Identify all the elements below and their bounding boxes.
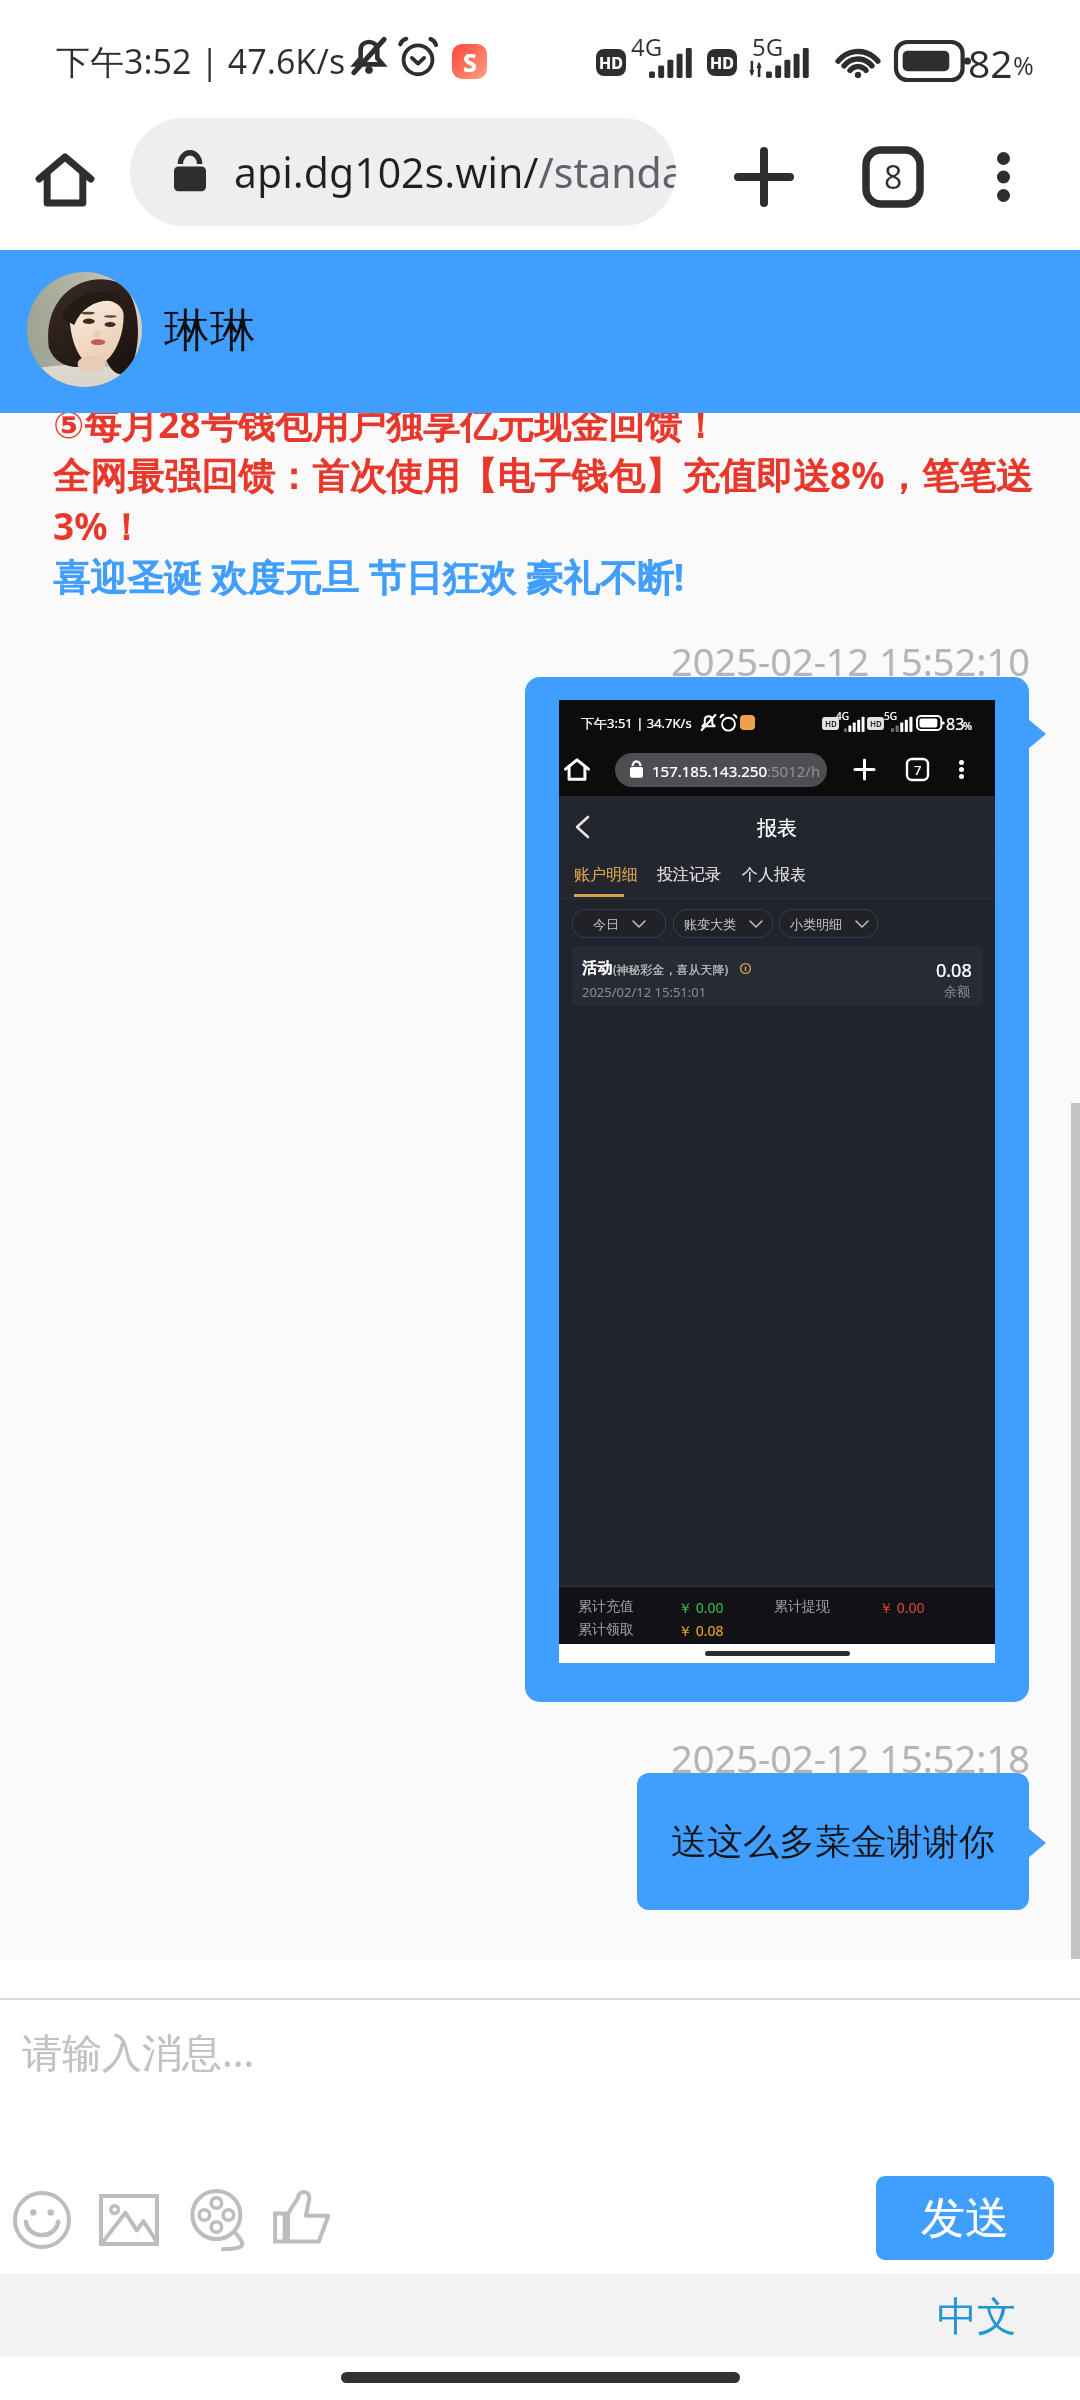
staticText: ￥ 0.08 — [678, 1621, 724, 1640]
staticText: 4G — [836, 709, 849, 723]
staticText: % — [963, 718, 973, 733]
staticText: 累计充值 — [578, 1598, 634, 1616]
staticText: 5G — [752, 30, 784, 63]
staticText: 82 — [968, 36, 1013, 89]
staticText: ⑤每月28号钱包用户独享亿元现金回馈！ — [53, 398, 719, 449]
staticText: 活动 — [582, 959, 612, 978]
button[interactable]: Tabs — [851, 135, 935, 219]
button[interactable]: New tab — [722, 135, 806, 219]
staticText: S — [463, 45, 477, 79]
staticText: 今日 — [593, 916, 619, 932]
staticText: 琳琳 — [164, 302, 256, 360]
button[interactable]: 小类明细 — [779, 909, 878, 938]
staticText: 5G — [884, 709, 897, 723]
button[interactable]: Emoji — [13, 2191, 71, 2249]
staticText: 请输入消息... — [22, 2024, 255, 2079]
staticText: 送这么多菜金谢谢你 — [671, 1819, 995, 1864]
button[interactable]: 送这么多菜金谢谢你 — [637, 1773, 1029, 1910]
staticText: 3%！ — [53, 500, 145, 551]
staticText: 余额 — [944, 983, 970, 999]
staticText: % — [1013, 48, 1034, 82]
button[interactable]: 发送 — [876, 2176, 1054, 2260]
staticText: 全网最强回馈：首次使用【电子钱包】充值即送8%，笔笔送 — [53, 449, 1033, 500]
button[interactable] — [615, 753, 827, 787]
button[interactable]: Like — [274, 2190, 330, 2246]
staticText: ￥ 0.00 — [879, 1598, 925, 1617]
button[interactable]: Screenshot image — [525, 677, 1029, 1702]
button[interactable]: 今日 — [572, 909, 666, 938]
button[interactable]: Picture — [99, 2194, 159, 2246]
staticText: 累计提现 — [774, 1598, 830, 1616]
button[interactable]: 琳琳 — [0, 250, 1080, 413]
staticText: 个人报表 — [742, 865, 806, 885]
staticText: HD — [599, 52, 623, 74]
staticText: 累计领取 — [578, 1621, 634, 1639]
staticText: 下午3:51 | 34.7K/s — [581, 714, 692, 732]
staticText: ￥ 0.00 — [678, 1598, 724, 1617]
staticText: 4G — [631, 30, 663, 63]
staticText: (神秘彩金，喜从天降) — [613, 961, 729, 977]
button[interactable]: 账变大类 — [673, 909, 773, 938]
button[interactable]: 中文 — [0, 2274, 1080, 2357]
staticText: HD — [870, 718, 882, 729]
staticText: 报表 — [559, 816, 995, 841]
staticText: 157.185.143.250:5012/h — [652, 761, 821, 781]
staticText: 账户明细 — [574, 865, 638, 885]
staticText: HD — [825, 718, 837, 729]
button[interactable]: api.dg102s.win//standa — [130, 118, 676, 226]
button[interactable]: Home — [26, 142, 104, 218]
button[interactable] — [572, 946, 983, 1006]
staticText: 2025-02-12 15:52:18 — [0, 1732, 1030, 1784]
staticText: 7 — [914, 761, 922, 779]
staticText: 83 — [946, 713, 965, 735]
staticText: 喜迎圣诞 欢度元旦 节日狂欢 豪礼不断! — [53, 551, 685, 602]
staticText: 投注记录 — [657, 865, 721, 885]
staticText: 中文 — [937, 2291, 1017, 2341]
staticText: HD — [710, 52, 734, 74]
staticText: 小类明细 — [790, 916, 842, 932]
staticText: 8 — [884, 155, 903, 199]
staticText: api.dg102s.win//standa — [234, 144, 676, 200]
staticText: 发送 — [921, 2191, 1009, 2246]
staticText: 下午3:52 | 47.6K/s — [56, 38, 346, 84]
staticText: 0.08 — [936, 958, 972, 983]
staticText: 2025/02/12 15:51:01 — [582, 983, 707, 1001]
button[interactable]: Video — [190, 2191, 250, 2251]
staticText: 2025-02-12 15:52:10 — [0, 635, 1030, 687]
staticText: 账变大类 — [684, 916, 736, 932]
button[interactable]: More options — [961, 135, 1045, 219]
button[interactable]: 请输入消息... — [0, 2000, 1080, 2274]
